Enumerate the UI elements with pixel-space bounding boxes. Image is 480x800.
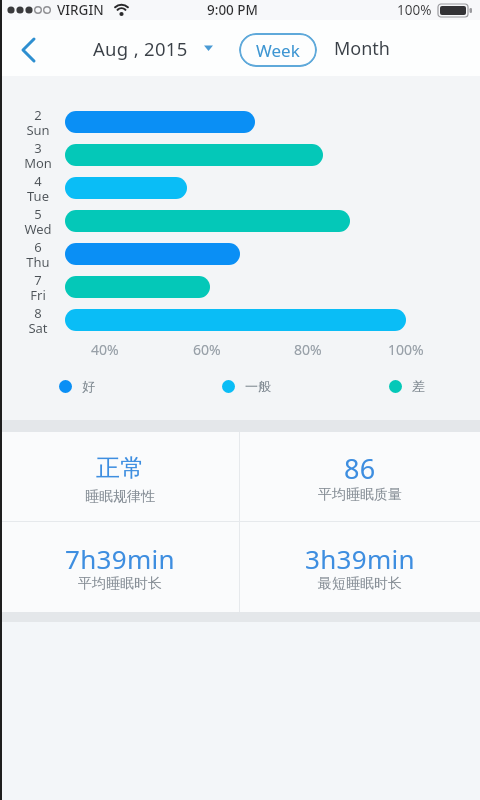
staticText: 9:00 PM xyxy=(207,1,258,19)
staticText: 差 xyxy=(412,378,425,394)
button[interactable] xyxy=(240,432,480,522)
staticText: 最短睡眠时长 xyxy=(318,575,402,593)
staticText: 2 Sun xyxy=(26,106,50,139)
staticText: 100% xyxy=(388,340,424,359)
button[interactable] xyxy=(0,522,240,612)
staticText: 睡眠规律性 xyxy=(85,488,155,506)
staticText: 7 Fri xyxy=(30,271,46,304)
staticText: Month xyxy=(334,36,390,61)
staticText: 6 Thu xyxy=(26,238,50,271)
staticText: 80% xyxy=(294,340,322,359)
staticText: 正常 xyxy=(96,453,145,483)
staticText: 8 Sat xyxy=(28,304,48,337)
staticText: Aug , 2015 xyxy=(93,36,188,61)
staticText: 平均睡眠质量 xyxy=(318,486,402,504)
button[interactable]: Aug , 2015 xyxy=(93,28,214,68)
staticText: 60% xyxy=(193,340,221,359)
staticText: 好 xyxy=(82,378,95,394)
staticText: 7h39min xyxy=(65,541,175,576)
button[interactable] xyxy=(0,432,240,522)
staticText: Week xyxy=(256,39,300,62)
staticText: 一般 xyxy=(245,378,271,394)
staticText: 100% xyxy=(397,1,432,19)
staticText: 86 xyxy=(344,450,376,487)
staticText: 40% xyxy=(91,340,119,359)
staticText: 3h39min xyxy=(305,541,415,576)
staticText: 4 Tue xyxy=(27,172,49,205)
staticText: 平均睡眠时长 xyxy=(78,575,162,593)
staticText: 5 Wed xyxy=(24,205,52,238)
button[interactable]: Month xyxy=(326,28,398,68)
button[interactable]: Week xyxy=(239,33,317,67)
button[interactable] xyxy=(240,522,480,612)
staticText: 3 Mon xyxy=(24,139,52,172)
button[interactable] xyxy=(8,28,52,72)
staticText: VIRGIN xyxy=(57,1,104,19)
